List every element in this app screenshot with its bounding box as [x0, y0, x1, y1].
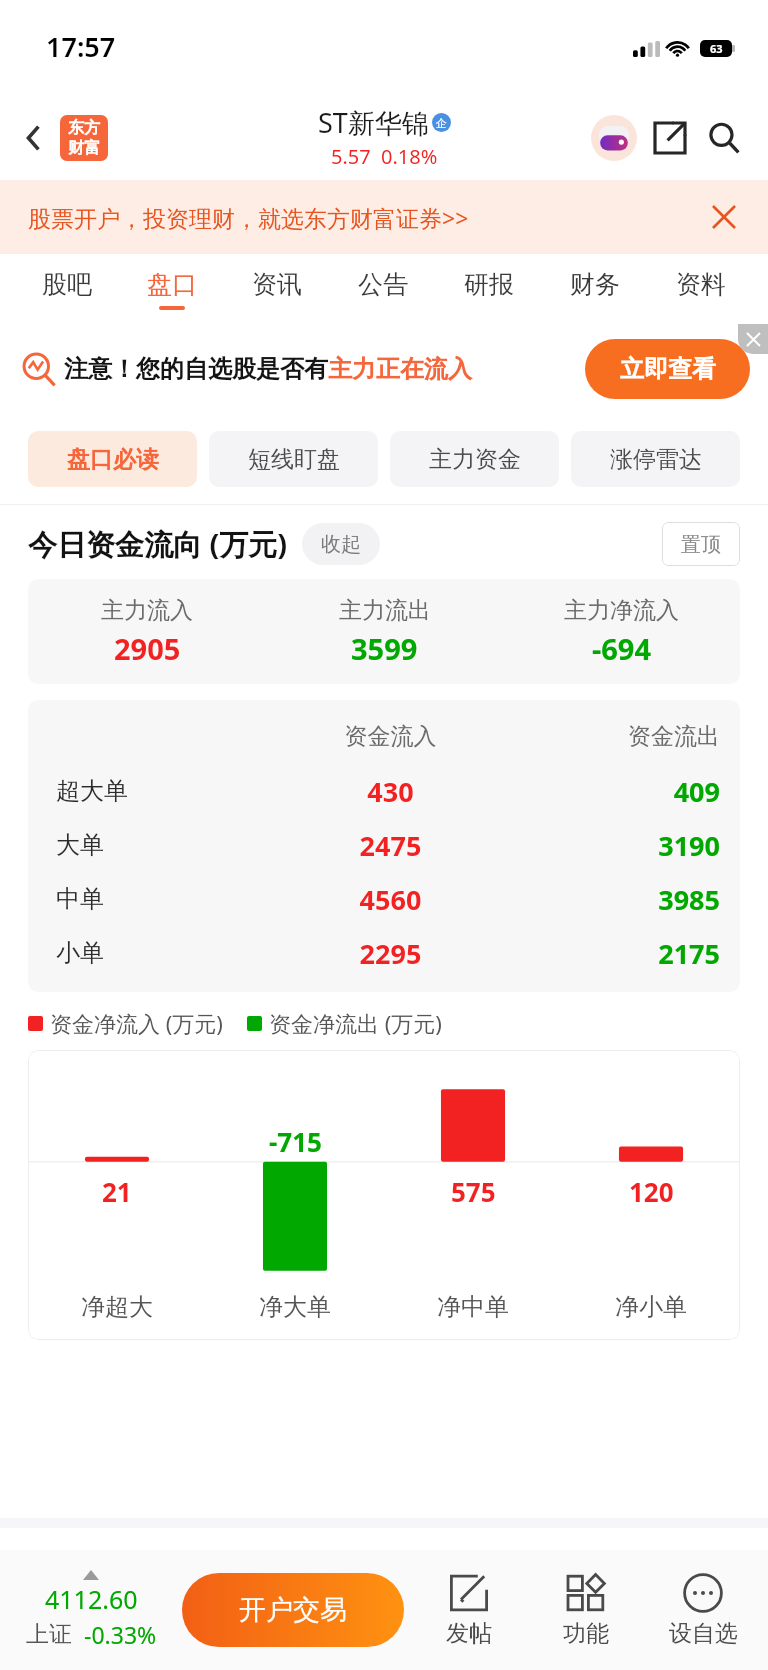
staticText: 盘口必读 — [67, 445, 159, 474]
button[interactable]: 主力流入 — [28, 579, 740, 684]
staticText: 今日资金流向 (万元) — [28, 524, 288, 564]
button[interactable]: 中单 — [28, 872, 740, 926]
staticText: 主力正在流入 — [328, 354, 472, 384]
staticText: 资料 — [676, 269, 726, 300]
staticText: 4560 — [274, 881, 507, 918]
staticText: 企 — [436, 116, 447, 130]
staticText: 3599 — [351, 629, 418, 668]
staticText: 置顶 — [681, 532, 721, 557]
staticText: 涨停雷达 — [610, 445, 702, 474]
staticText: 立即查看 — [620, 354, 716, 384]
staticText: 财务 — [570, 269, 620, 300]
staticText: 发帖 — [446, 1619, 492, 1648]
staticText: 120 — [629, 1174, 674, 1209]
button[interactable]: 收起 — [302, 523, 380, 565]
staticText: 净超大 — [81, 1292, 153, 1322]
staticText: ST新华锦 — [318, 104, 429, 141]
staticText: 短线盯盘 — [248, 445, 340, 474]
button[interactable]: 东方财富 — [60, 115, 108, 161]
staticText: 资讯 — [252, 269, 302, 300]
staticText: 409 — [507, 773, 720, 810]
staticText: 盘口 — [147, 269, 197, 300]
button[interactable]: 发帖 — [417, 1573, 521, 1648]
staticText: 2295 — [274, 935, 507, 972]
staticText: 2175 — [507, 935, 720, 972]
staticText: 股吧 — [42, 269, 92, 300]
staticText: 575 — [451, 1174, 496, 1209]
button[interactable]: 置顶 — [662, 522, 740, 566]
button[interactable]: 小单 — [28, 926, 740, 980]
button[interactable]: 关闭 — [702, 195, 746, 239]
button[interactable]: 设自选 — [651, 1573, 755, 1648]
staticText: 主力资金 — [429, 445, 521, 474]
staticText: 财富 — [68, 138, 100, 158]
button[interactable]: 涨停雷达 — [571, 431, 740, 487]
button[interactable]: 短线盯盘 — [209, 431, 378, 487]
staticText: 2475 — [274, 827, 507, 864]
button[interactable]: 财务 — [542, 269, 648, 310]
staticText: -694 — [592, 629, 652, 668]
staticText: 小单 — [56, 938, 274, 968]
button[interactable]: 开户交易 — [182, 1573, 404, 1647]
button[interactable]: 关闭广告 — [738, 324, 768, 354]
staticText: 功能 — [563, 1619, 609, 1648]
staticText: 4112.60 — [45, 1582, 138, 1616]
staticText: 中单 — [56, 884, 274, 914]
staticText: -0.33% — [84, 1619, 157, 1650]
staticText: -715 — [269, 1124, 322, 1159]
staticText: 公告 — [358, 269, 408, 300]
staticText: 主力净流入 — [564, 596, 679, 625]
button[interactable]: 4112.60 — [0, 1570, 182, 1650]
staticText: 收起 — [321, 532, 361, 557]
staticText: 净中单 — [437, 1292, 509, 1322]
staticText: 430 — [274, 773, 507, 810]
button[interactable]: 资料 — [648, 269, 754, 310]
staticText: 上证 — [26, 1620, 72, 1649]
staticText: 净小单 — [615, 1292, 687, 1322]
staticText: 股票开户，投资理财，就选东方财富证券>> — [28, 202, 469, 233]
button[interactable]: 研报 — [436, 269, 542, 310]
staticText: 3985 — [507, 881, 720, 918]
staticText: 21 — [102, 1174, 132, 1209]
staticText: 63 — [710, 41, 723, 56]
button[interactable]: 立即查看 — [585, 339, 750, 399]
staticText: 大单 — [56, 830, 274, 860]
button[interactable]: 功能 — [534, 1573, 638, 1648]
button[interactable]: 大单 — [28, 818, 740, 872]
staticText: 0.18% — [381, 143, 438, 170]
staticText: 资金净流入 (万元) — [50, 1008, 223, 1038]
staticText: 注意！您的自选股是否有 — [64, 354, 328, 384]
staticText: 17:57 — [46, 28, 116, 65]
button[interactable]: 公告 — [330, 269, 436, 310]
staticText: 净大单 — [259, 1292, 331, 1322]
staticText: 资金净流出 (万元) — [269, 1008, 442, 1038]
button[interactable]: AI助手 — [588, 112, 640, 164]
button[interactable]: Back — [12, 116, 56, 160]
staticText: 设自选 — [669, 1619, 738, 1648]
staticText: 2905 — [114, 629, 181, 668]
button[interactable]: 盘口必读 — [28, 431, 197, 487]
staticText: 3190 — [507, 827, 720, 864]
button[interactable]: 股吧 — [14, 269, 119, 310]
button[interactable]: 主力资金 — [390, 431, 559, 487]
staticText: 研报 — [464, 269, 514, 300]
button[interactable]: 资讯 — [224, 269, 330, 310]
staticText: 超大单 — [56, 776, 274, 806]
staticText: 主力流出 — [339, 596, 431, 625]
button[interactable]: 盘口 — [119, 269, 224, 310]
button[interactable]: Search — [698, 112, 750, 164]
staticText: 5.57 — [331, 143, 371, 170]
staticText: 主力流入 — [101, 596, 193, 625]
button[interactable]: 超大单 — [28, 764, 740, 818]
staticText: 东方 — [68, 118, 100, 138]
staticText: 资金流出 — [507, 722, 720, 751]
staticText: 开户交易 — [239, 1593, 347, 1627]
button[interactable]: Share — [644, 112, 696, 164]
button[interactable]: 股票开户，投资理财，就选东方财富证券>> — [0, 180, 768, 254]
staticText: 资金流入 — [274, 722, 507, 751]
